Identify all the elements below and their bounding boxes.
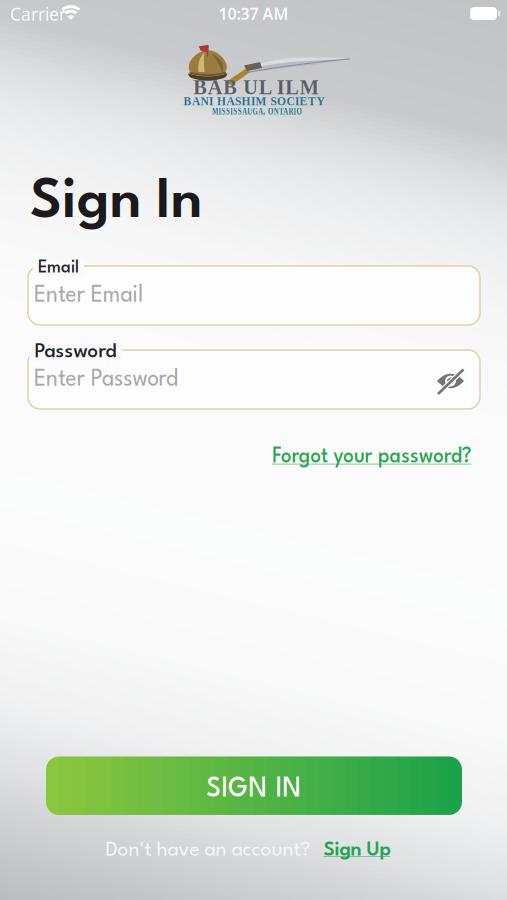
staticText: BANI HASHIM SOCIETY	[183, 95, 324, 108]
staticText: Enter Email	[34, 284, 151, 307]
button[interactable]	[28, 350, 480, 409]
staticText: Enter Password	[34, 368, 189, 391]
staticText: Sign Up	[323, 841, 390, 860]
staticText: Carrier	[10, 2, 66, 25]
staticText: Sign In	[30, 176, 202, 230]
button[interactable]	[28, 266, 480, 325]
button[interactable]: Sign Up	[323, 841, 390, 860]
staticText: Don't have an account?	[105, 841, 310, 860]
button[interactable]: Forgot your password?	[247, 446, 471, 468]
staticText: 10:37 AM	[218, 3, 288, 24]
staticText: Password	[35, 343, 117, 362]
staticText: SIGN IN	[201, 775, 307, 803]
button[interactable]: SIGN IN	[46, 756, 462, 815]
staticText: Email	[38, 260, 79, 276]
staticText: MISSISSAUGA, ONTARIO	[191, 106, 323, 117]
staticText: BAB UL ILM	[193, 76, 319, 98]
staticText: Forgot your password?	[247, 446, 471, 468]
button[interactable]: Show password	[428, 359, 472, 403]
